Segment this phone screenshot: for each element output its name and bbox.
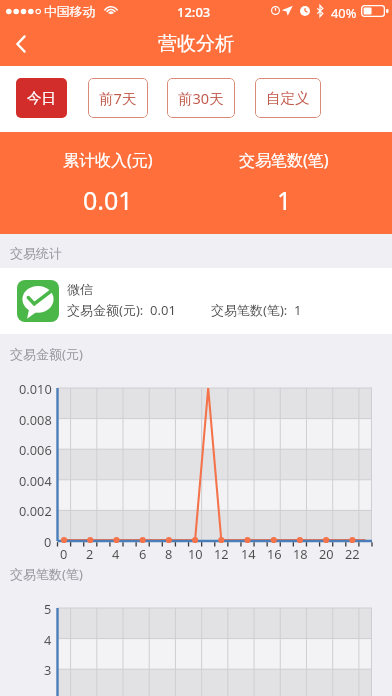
button[interactable]: 今日 <box>16 78 67 118</box>
staticText: 交易笔数(笔) <box>10 565 83 583</box>
staticText: 累计收入(元) <box>63 149 153 171</box>
staticText: 交易统计 <box>10 245 62 261</box>
staticText: 40% <box>331 4 357 21</box>
staticText: 今日 <box>27 89 56 107</box>
staticText: 0.01 <box>83 183 133 217</box>
staticText: 前30天 <box>178 88 224 108</box>
staticText: 12 <box>214 545 229 562</box>
staticText: 2 <box>86 545 94 562</box>
staticText: 5 <box>44 600 52 617</box>
staticText: 交易笔数(笔) <box>239 149 329 171</box>
staticText: 16 <box>267 545 282 562</box>
staticText: 8 <box>165 545 173 562</box>
staticText: 1 <box>277 183 292 217</box>
staticText: 12:03 <box>177 3 211 21</box>
staticText: 0 <box>44 533 52 550</box>
staticText: 0.006 <box>19 441 52 458</box>
staticText: 微信 <box>67 281 93 297</box>
staticText: 4 <box>112 545 120 562</box>
staticText: 前7天 <box>99 88 137 108</box>
staticText: 0 <box>60 545 68 562</box>
staticText: 营收分析 <box>158 32 234 56</box>
staticText: 3 <box>44 661 52 678</box>
button[interactable]: 自定义 <box>255 78 321 118</box>
button[interactable]: 前30天 <box>167 78 235 118</box>
staticText: 0.010 <box>19 380 52 397</box>
button[interactable]: 前7天 <box>88 78 148 118</box>
staticText: 自定义 <box>266 89 310 107</box>
staticText: 交易金额(元) <box>10 345 83 363</box>
staticText: 中国移动 <box>44 4 96 20</box>
staticText: 0.004 <box>19 472 52 489</box>
staticText: 交易金额(元): 0.01 <box>67 301 176 319</box>
button[interactable]: 返回 <box>0 22 42 66</box>
button[interactable]: 微信 <box>0 268 392 334</box>
staticText: 交易笔数(笔): 1 <box>211 301 302 319</box>
staticText: 0.002 <box>19 502 52 519</box>
staticText: 0.008 <box>19 411 52 428</box>
staticText: 20 <box>319 545 334 562</box>
staticText: 18 <box>293 545 308 562</box>
staticText: 10 <box>188 545 203 562</box>
staticText: 14 <box>241 545 256 562</box>
staticText: 6 <box>139 545 147 562</box>
staticText: 4 <box>44 631 52 648</box>
staticText: 22 <box>345 545 360 562</box>
